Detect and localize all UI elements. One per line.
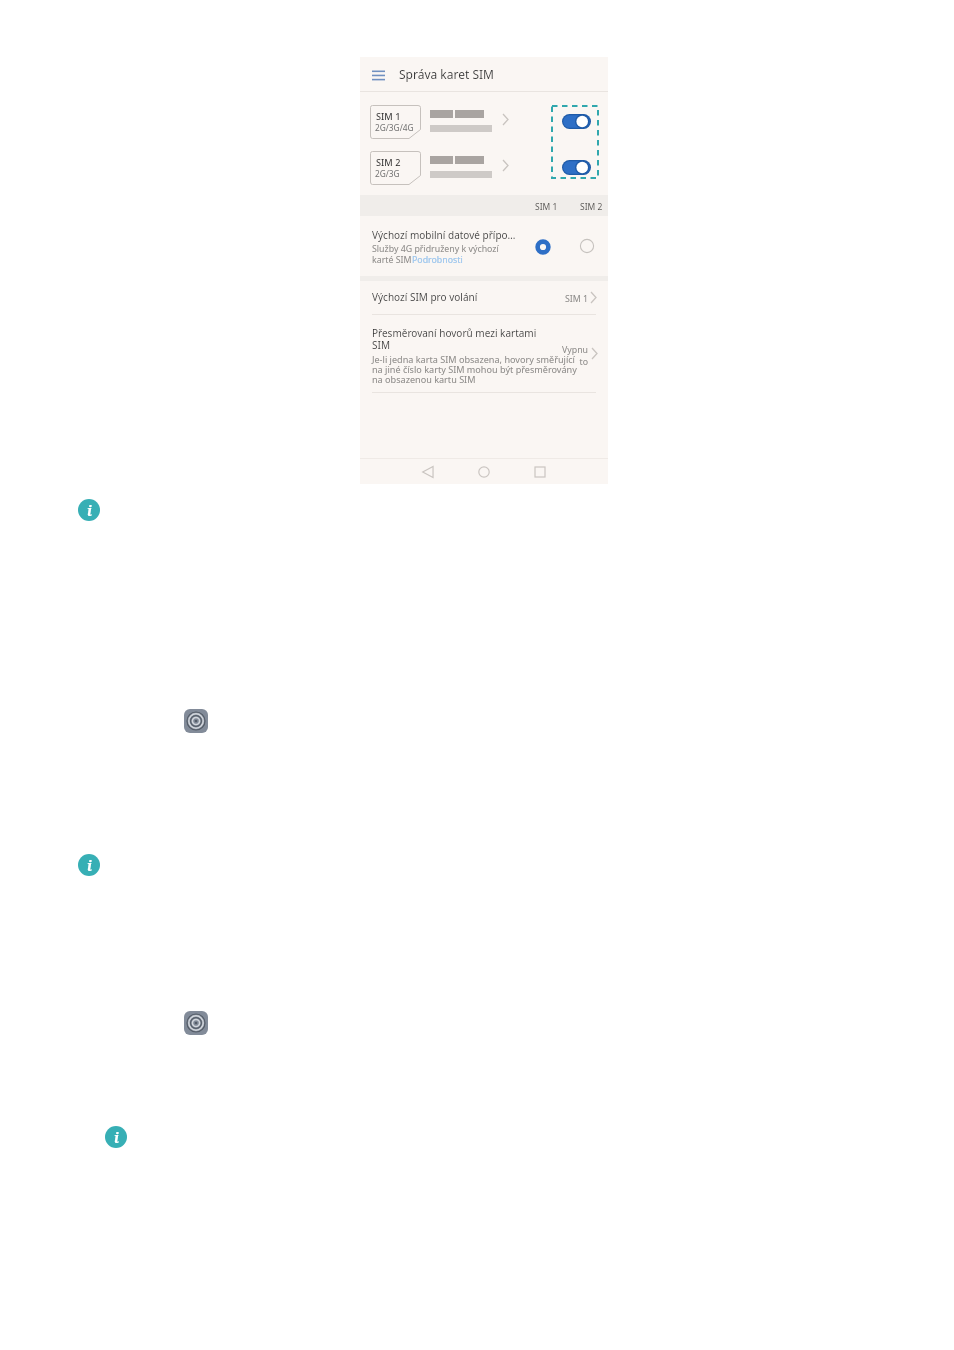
button[interactable]: SIM 1 [360, 105, 608, 145]
button[interactable]: Menu [372, 69, 386, 81]
staticText: 2G/3G/4G [375, 122, 414, 133]
staticText: Služby 4G přidruženy k výchozí [372, 243, 499, 255]
staticText: SIM 2 [580, 201, 603, 213]
button[interactable]: Information [105, 1126, 127, 1148]
button[interactable]: Menu [360, 57, 608, 91]
button[interactable]: Toggle SIM [562, 160, 591, 175]
staticText: Správa karet SIM [399, 66, 494, 82]
button[interactable]: SIM 2 [360, 151, 608, 191]
staticText: 2G/3G [375, 168, 400, 179]
staticText: i [87, 856, 92, 875]
staticText: i [87, 501, 92, 520]
button[interactable]: Settings [184, 709, 208, 733]
staticText: SIM 1 [535, 201, 558, 213]
staticText: Přesměrovaní hovorů mezi kartami SIM [372, 326, 612, 352]
button[interactable]: Information [78, 499, 100, 521]
button[interactable]: Přesměrovaní hovorů mezi kartami SIM [360, 315, 608, 392]
staticText: i [114, 1128, 119, 1147]
button[interactable]: Výchozí mobilní datové přípo… [360, 216, 608, 276]
staticText: SIM 1 [565, 293, 589, 305]
button[interactable]: Settings [184, 1011, 208, 1035]
staticText: Podrobnosti [412, 254, 463, 266]
button[interactable]: Výchozí SIM pro volání [360, 281, 608, 314]
button[interactable]: Toggle SIM [562, 114, 591, 129]
staticText: SIM 1 [376, 110, 401, 123]
button[interactable]: Information [78, 854, 100, 876]
staticText: karté SIM [372, 254, 412, 266]
staticText: Výchozí SIM pro volání [372, 290, 478, 304]
staticText: SIM 2 [376, 156, 401, 169]
staticText: Vypnu to [552, 344, 588, 368]
staticText: Výchozí mobilní datové přípo… [372, 228, 516, 242]
staticText: Je-li jedna karta SIM obsazena, hovory s… [372, 353, 612, 385]
button[interactable]: Recents [528, 460, 552, 484]
button[interactable]: Home [472, 460, 496, 484]
button[interactable]: Back [416, 460, 440, 484]
